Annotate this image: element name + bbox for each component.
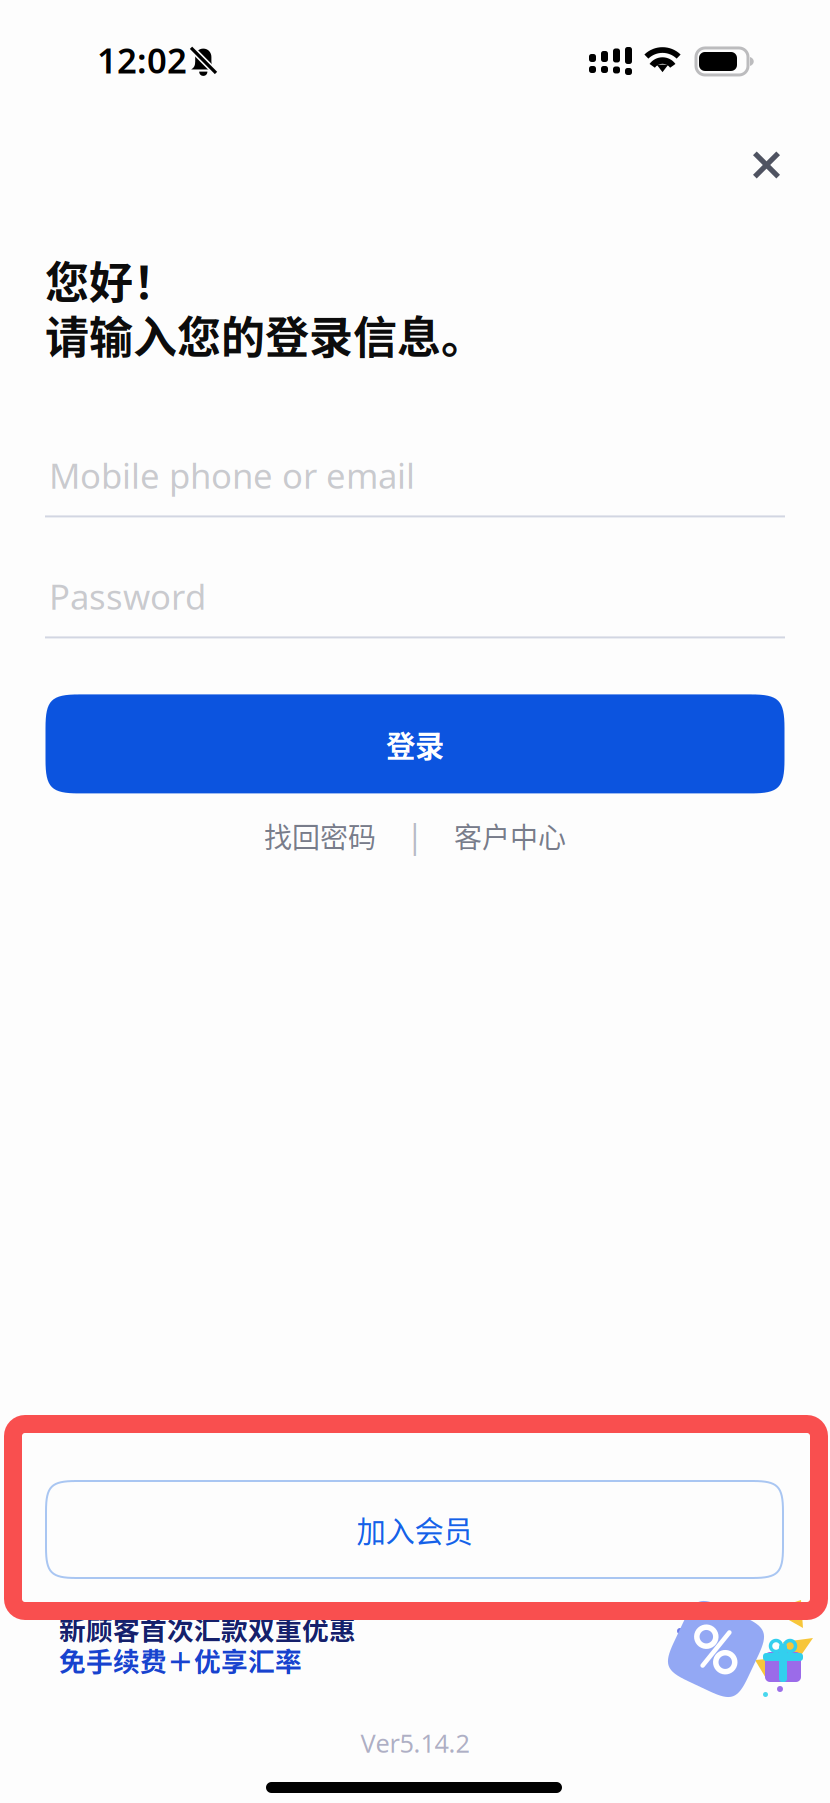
- staticText: 加入会员: [356, 1508, 472, 1551]
- button[interactable]: 客户中心: [442, 807, 578, 864]
- button[interactable]: 加入会员: [46, 1481, 783, 1578]
- staticText: 找回密码: [264, 815, 376, 856]
- button[interactable]: Close: [730, 129, 802, 201]
- staticText: 客户中心: [454, 815, 566, 856]
- staticText: 新顾客首次汇款双重优惠: [59, 1609, 356, 1648]
- staticText: |: [406, 814, 424, 857]
- staticText: 登录: [386, 723, 444, 765]
- button[interactable]: 找回密码: [252, 807, 388, 864]
- staticText: 免手续费＋优享汇率: [59, 1641, 302, 1679]
- staticText: Password: [49, 573, 206, 619]
- button[interactable]: 登录: [45, 694, 784, 793]
- staticText: Mobile phone or email: [49, 452, 415, 498]
- staticText: 您好！ 请输入您的登录信息。: [45, 248, 485, 366]
- staticText: Ver5.14.2: [360, 1726, 469, 1760]
- staticText: 12:02: [97, 37, 187, 83]
